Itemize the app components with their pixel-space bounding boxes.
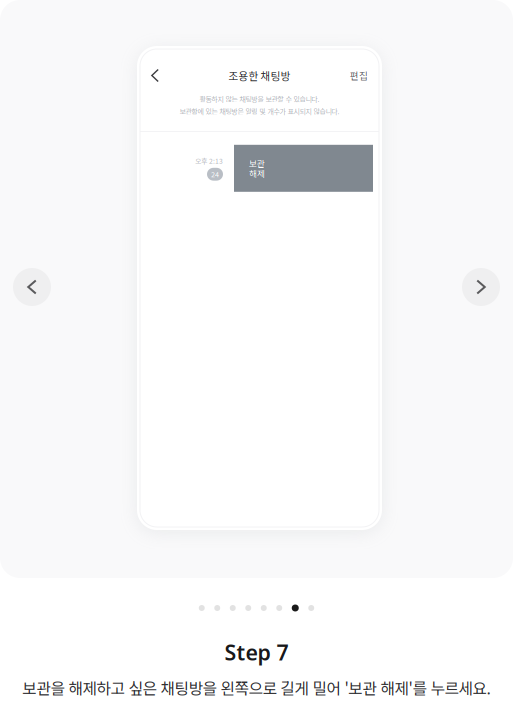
staticText: 보관함에 있는 채팅방은 알림 및 개수가 표시되지 않습니다. — [179, 106, 339, 116]
button[interactable]: 보관 — [234, 145, 373, 192]
staticText: 보관 — [249, 157, 265, 169]
staticText: Step 7 — [224, 638, 288, 666]
staticText: 조용한 채팅방 — [228, 68, 290, 83]
button[interactable]: Back — [143, 60, 167, 90]
staticText: 활동하지 않는 채팅방을 보관할 수 있습니다. — [199, 94, 319, 104]
button[interactable]: Next step — [462, 268, 500, 306]
staticText: 해제 — [249, 167, 265, 180]
staticText: 보관을 해제하고 싶은 채팅방을 왼쪽으로 길게 밀어 '보관 해제'를 누르세… — [22, 676, 490, 699]
button[interactable]: 편집 — [344, 60, 374, 90]
staticText: 오후 2:13 — [195, 156, 223, 166]
staticText: 편집 — [350, 69, 368, 82]
button[interactable]: Previous step — [13, 268, 51, 306]
staticText: 24 — [211, 169, 219, 179]
